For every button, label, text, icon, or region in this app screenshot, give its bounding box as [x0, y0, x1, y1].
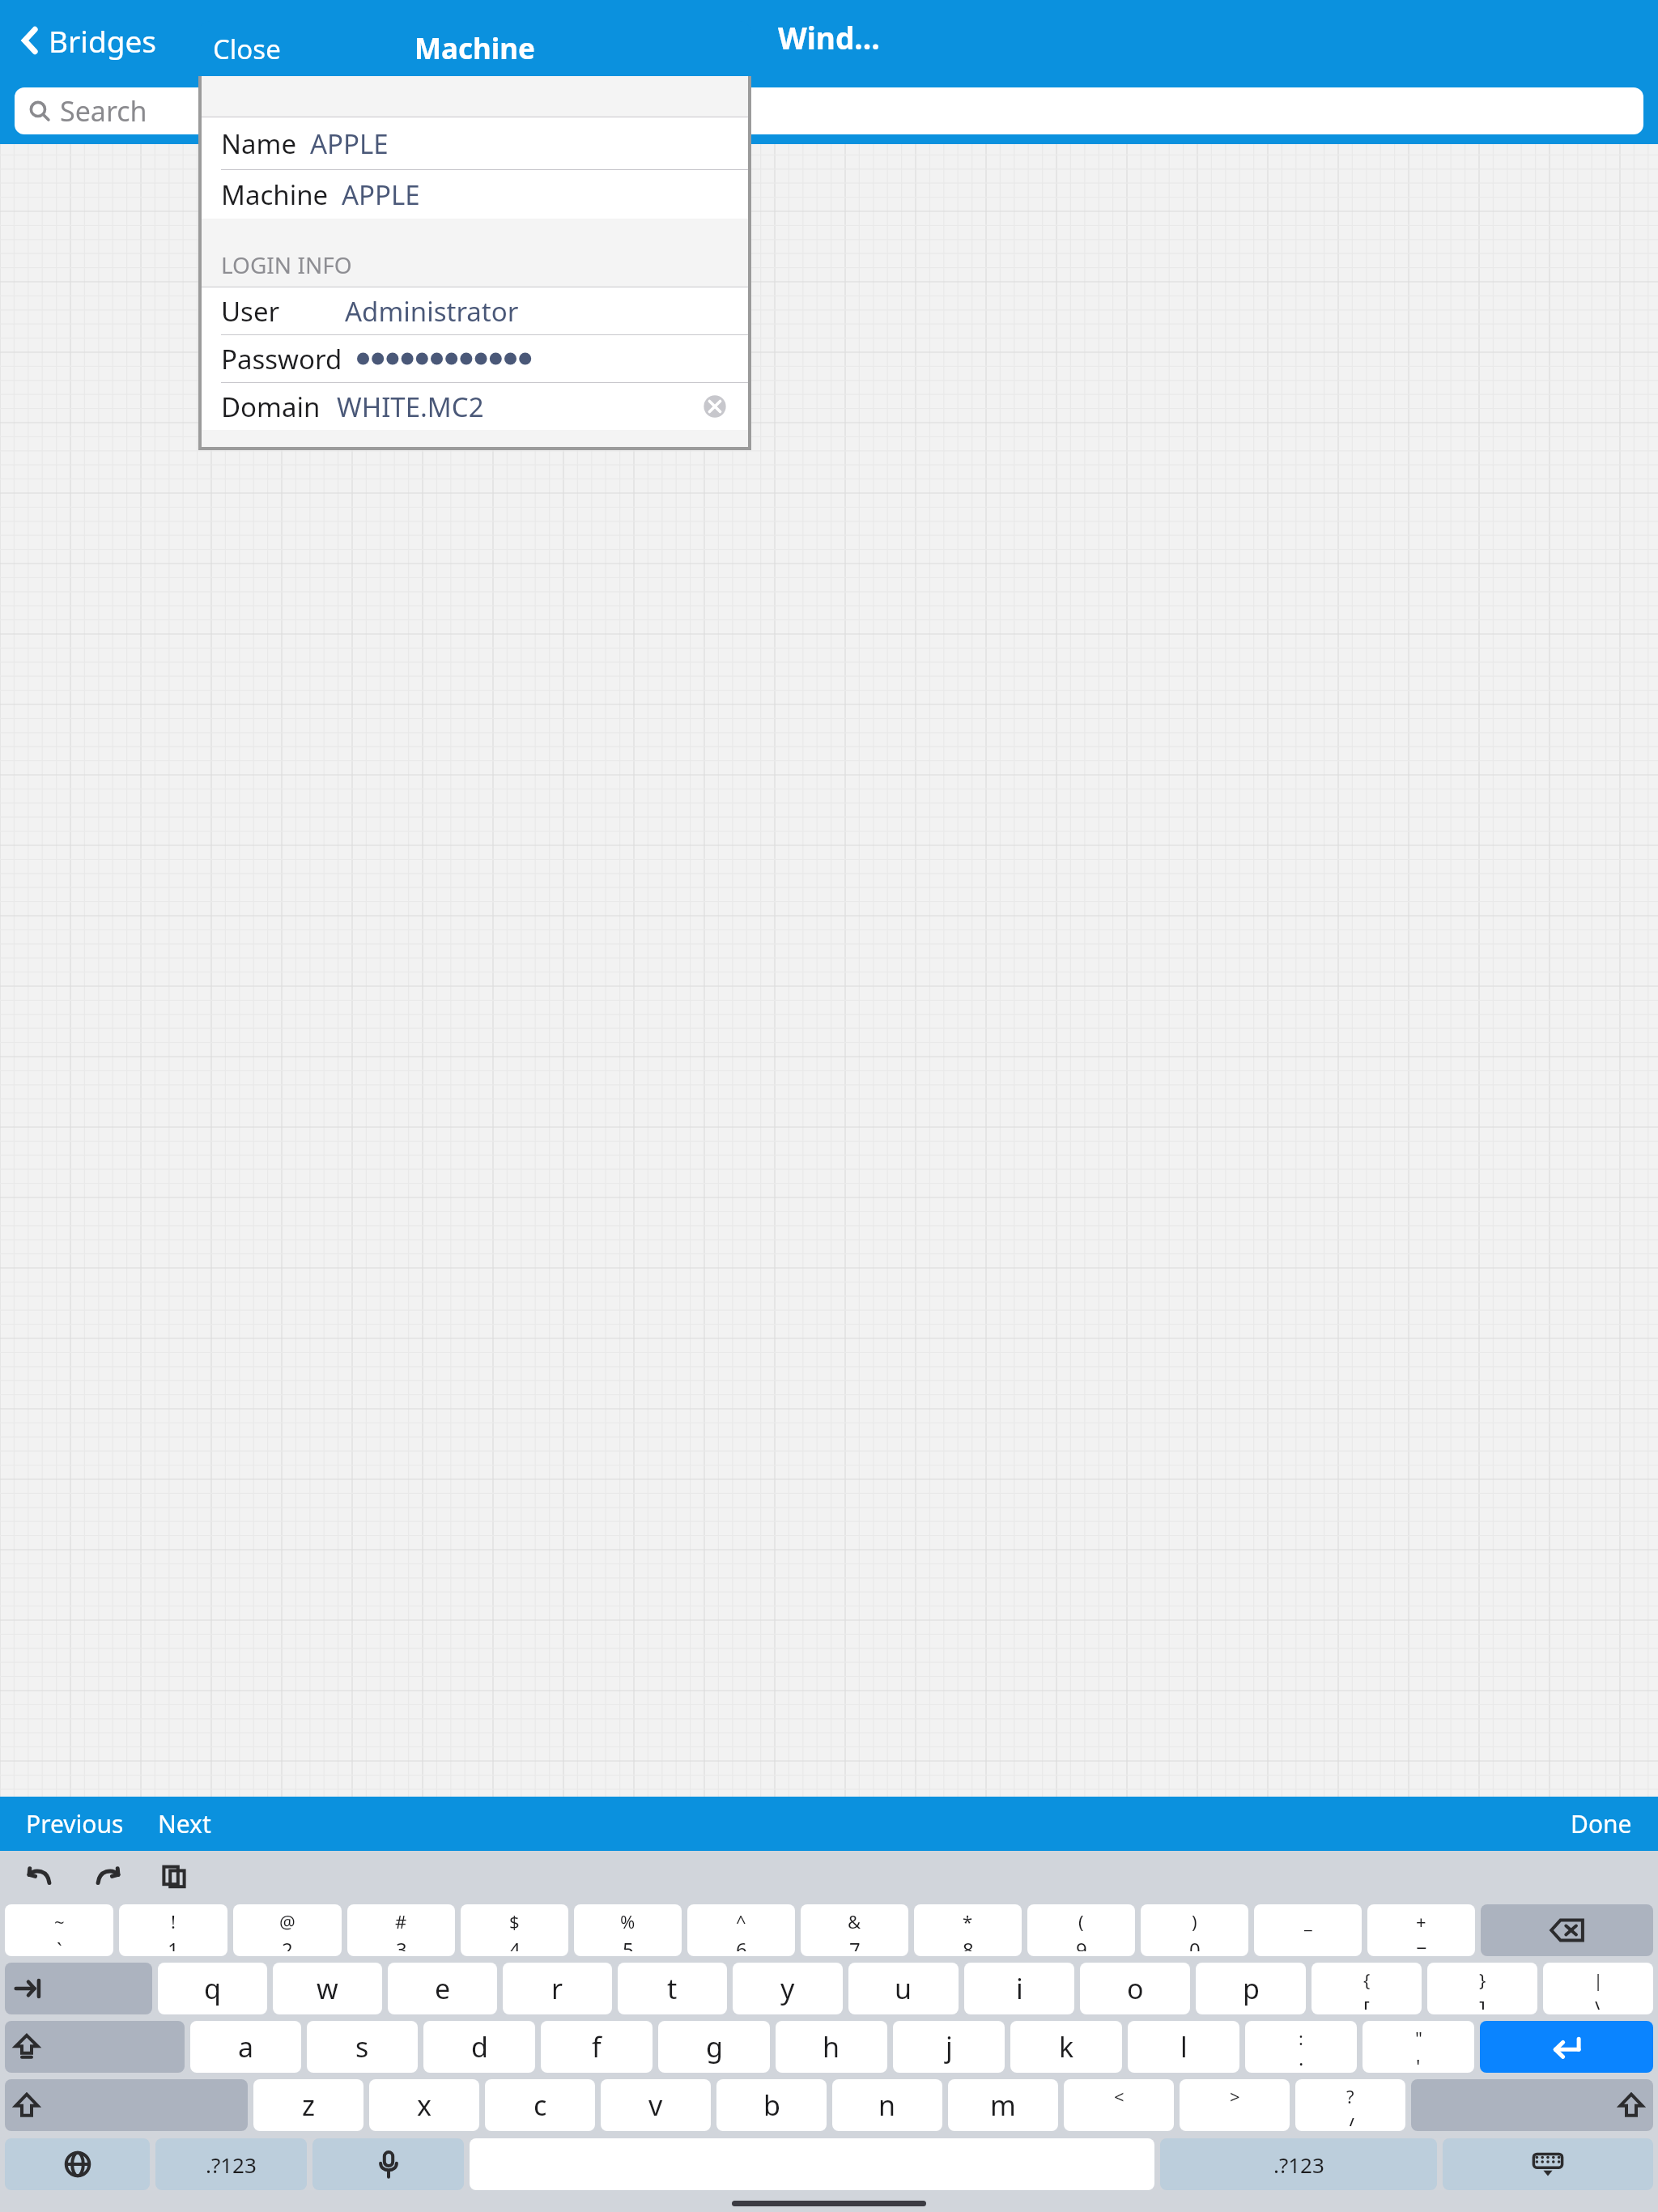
button[interactable]: u: [848, 1963, 959, 2014]
button[interactable]: Key: [1160, 2138, 1437, 2190]
button[interactable]: !: [119, 1904, 227, 1956]
staticText: w: [317, 1970, 338, 2007]
button[interactable]: ": [1363, 2021, 1474, 2073]
staticText: .?123: [206, 2150, 257, 2179]
button[interactable]: r: [503, 1963, 612, 2014]
staticText: f: [592, 2028, 602, 2065]
staticText: 3: [396, 1936, 407, 1951]
button[interactable]: Done: [1561, 1799, 1642, 1848]
staticText: b: [763, 2087, 780, 2124]
button[interactable]: @: [233, 1904, 342, 1956]
button[interactable]: ): [1141, 1904, 1248, 1956]
staticText: *: [963, 1909, 973, 1933]
button[interactable]: User: [202, 287, 748, 334]
button[interactable]: s: [307, 2021, 418, 2073]
button[interactable]: w: [273, 1963, 382, 2014]
button[interactable]: %: [574, 1904, 682, 1956]
staticText: !: [171, 1909, 176, 1933]
button[interactable]: Domain: [202, 383, 748, 430]
button[interactable]: Return: [1480, 2021, 1653, 2073]
button[interactable]: Space: [470, 2138, 1154, 2190]
staticText: d: [471, 2028, 488, 2065]
button[interactable]: {: [1312, 1963, 1422, 2014]
button[interactable]: Key: [1443, 2138, 1653, 2190]
button[interactable]: Search: [15, 87, 1643, 134]
button[interactable]: >: [1180, 2079, 1290, 2131]
staticText: o: [1127, 1970, 1144, 2007]
button[interactable]: t: [618, 1963, 727, 2014]
button[interactable]: Password: [202, 335, 748, 382]
staticText: Name: [221, 125, 297, 162]
button[interactable]: g: [658, 2021, 770, 2073]
button[interactable]: Next: [148, 1799, 221, 1848]
staticText: User: [221, 293, 280, 330]
staticText: t: [667, 1970, 678, 2007]
button[interactable]: q: [158, 1963, 267, 2014]
button[interactable]: $: [461, 1904, 568, 1956]
button[interactable]: n: [832, 2079, 942, 2131]
staticText: Previous: [26, 1807, 124, 1840]
staticText: .?123: [1273, 2150, 1324, 2179]
button[interactable]: *: [914, 1904, 1022, 1956]
button[interactable]: Key: [5, 2138, 150, 2190]
button[interactable]: Undo: [18, 1854, 62, 1898]
button[interactable]: }: [1427, 1963, 1537, 2014]
button[interactable]: k: [1010, 2021, 1122, 2073]
staticText: (: [1078, 1909, 1084, 1933]
button[interactable]: h: [776, 2021, 887, 2073]
button[interactable]: z: [253, 2079, 363, 2131]
button[interactable]: x: [369, 2079, 479, 2131]
button[interactable]: #: [347, 1904, 455, 1956]
button[interactable]: i: [964, 1963, 1074, 2014]
staticText: e: [435, 1970, 451, 2007]
button[interactable]: Modifier key: [5, 1963, 152, 2014]
staticText: 6: [736, 1936, 747, 1951]
button[interactable]: Paste: [154, 1856, 194, 1896]
button[interactable]: b: [716, 2079, 827, 2131]
button[interactable]: e: [388, 1963, 497, 2014]
button[interactable]: c: [485, 2079, 595, 2131]
button[interactable]: _: [1254, 1904, 1362, 1956]
staticText: Machine: [414, 29, 535, 68]
button[interactable]: a: [190, 2021, 301, 2073]
button[interactable]: l: [1128, 2021, 1239, 2073]
staticText: \: [1595, 1994, 1602, 2010]
button[interactable]: Clear text: [703, 394, 727, 419]
button[interactable]: Modifier key: [5, 2021, 185, 2073]
button[interactable]: Key: [312, 2138, 464, 2190]
button[interactable]: Machine: [202, 170, 748, 219]
button[interactable]: :: [1245, 2021, 1357, 2073]
staticText: {: [1363, 1967, 1371, 1992]
button[interactable]: Modifier key: [1411, 2079, 1653, 2131]
staticText: x: [417, 2087, 432, 2124]
button[interactable]: Name: [202, 117, 748, 169]
button[interactable]: |: [1543, 1963, 1653, 2014]
button[interactable]: Close: [198, 23, 295, 75]
button[interactable]: Redo: [86, 1854, 130, 1898]
staticText: p: [1243, 1970, 1260, 2007]
button[interactable]: j: [893, 2021, 1005, 2073]
button[interactable]: ?: [1295, 2079, 1405, 2131]
button[interactable]: ^: [687, 1904, 795, 1956]
button[interactable]: Previous: [16, 1799, 134, 1848]
button[interactable]: ~: [5, 1904, 113, 1956]
button[interactable]: o: [1080, 1963, 1190, 2014]
button[interactable]: p: [1196, 1963, 1306, 2014]
button[interactable]: d: [423, 2021, 535, 2073]
button[interactable]: f: [541, 2021, 653, 2073]
button[interactable]: Key: [155, 2138, 307, 2190]
button[interactable]: v: [601, 2079, 711, 2131]
button[interactable]: &: [801, 1904, 908, 1956]
button[interactable]: (: [1027, 1904, 1135, 1956]
staticText: Search: [60, 92, 147, 130]
button[interactable]: y: [733, 1963, 843, 2014]
button[interactable]: Modifier key: [5, 2079, 248, 2131]
button[interactable]: Modifier key: [1481, 1904, 1653, 1956]
staticText: ~: [54, 1909, 65, 1933]
button[interactable]: m: [948, 2079, 1058, 2131]
button[interactable]: Bridges: [15, 14, 163, 67]
button[interactable]: +: [1367, 1904, 1475, 1956]
button[interactable]: <: [1064, 2079, 1174, 2131]
